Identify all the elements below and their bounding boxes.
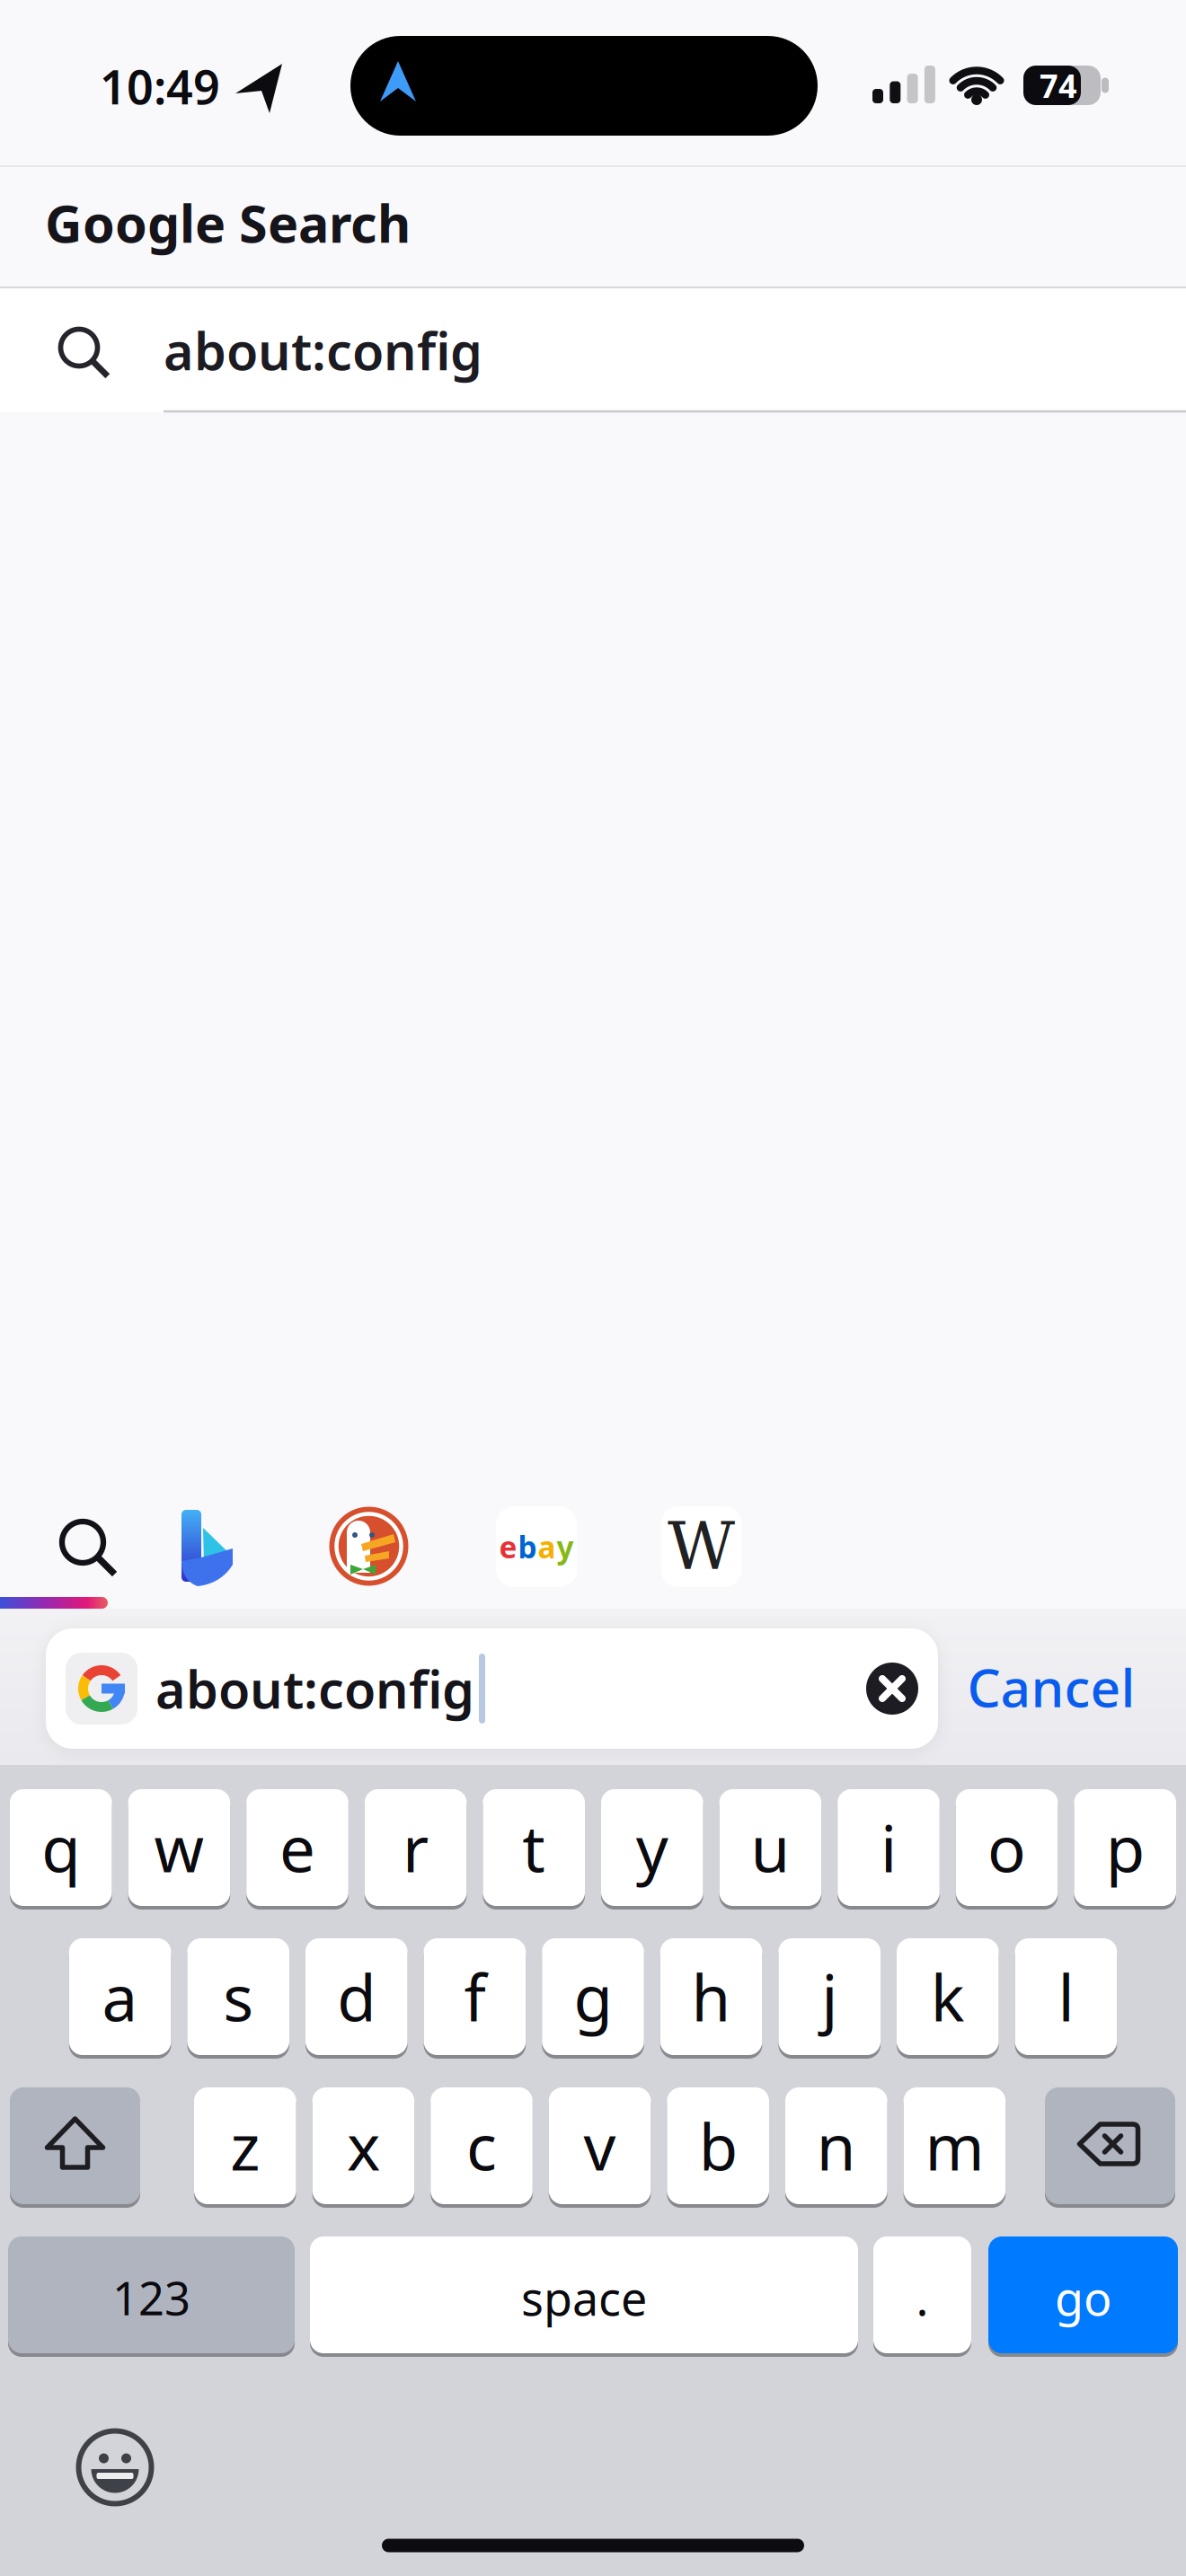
button[interactable]: about:config [0,288,1186,412]
button[interactable] [38,1502,128,1592]
button[interactable]: f [424,1936,526,2057]
button[interactable]: x [312,2086,414,2206]
button[interactable]: m [904,2086,1006,2206]
button[interactable]: about:config [46,1628,938,1749]
staticText: w [154,1805,204,1890]
staticText: about:config [164,316,482,384]
button[interactable]: 123 [8,2235,295,2355]
button[interactable]: u [719,1787,821,1908]
button[interactable]: w [128,1787,230,1908]
staticText: b [518,1527,537,1567]
button[interactable] [70,2422,160,2512]
button[interactable]: h [660,1936,762,2057]
staticText: 74 [1040,64,1077,107]
staticText: about:config [155,1654,474,1723]
button[interactable]: c [431,2086,533,2206]
button[interactable]: y [601,1787,703,1908]
button[interactable]: Cancel [967,1652,1135,1722]
button[interactable]: b [667,2086,769,2206]
button[interactable]: p [1074,1787,1176,1908]
staticText: d [337,1955,376,2039]
button[interactable] [324,1501,414,1591]
staticText: u [751,1805,790,1890]
button[interactable] [350,36,818,136]
button[interactable] [10,2086,140,2206]
button[interactable]: l [1015,1936,1117,2057]
staticText: . [916,2267,929,2329]
staticText: q [42,1805,80,1890]
staticText: m [925,2104,984,2188]
staticText: 10:49 [100,55,220,117]
button[interactable]: . [873,2235,971,2355]
staticText: space [521,2267,647,2329]
button[interactable]: d [305,1936,408,2057]
staticText: y [557,1527,574,1567]
staticText: b [699,2104,737,2188]
button[interactable]: s [187,1936,289,2057]
staticText: go [1055,2267,1111,2329]
staticText: a [538,1527,556,1567]
button[interactable]: z [194,2086,296,2206]
staticText: h [691,1955,731,2039]
button[interactable] [1045,2086,1175,2206]
button[interactable]: t [483,1787,585,1908]
button[interactable]: space [310,2235,858,2355]
staticText: Cancel [967,1652,1135,1722]
staticText: e [499,1527,517,1567]
staticText: 123 [112,2267,190,2328]
button[interactable]: a [69,1936,171,2057]
staticText: g [574,1955,612,2039]
button[interactable]: o [956,1787,1058,1908]
button[interactable]: e [246,1787,348,1908]
button[interactable]: e [496,1506,577,1587]
button[interactable]: go [988,2235,1178,2355]
staticText: i [881,1805,897,1890]
staticText: Google Search [45,189,411,257]
button[interactable]: W [661,1506,742,1587]
button[interactable]: j [778,1936,881,2057]
staticText: t [522,1805,546,1890]
staticText: p [1106,1805,1144,1890]
staticText: s [223,1955,254,2039]
staticText: z [230,2104,260,2188]
button[interactable]: i [838,1787,940,1908]
button[interactable]: q [10,1787,112,1908]
staticText: y [636,1805,668,1890]
staticText: n [817,2104,856,2188]
button[interactable]: r [365,1787,467,1908]
staticText: k [931,1955,965,2039]
staticText: a [102,1955,138,2039]
staticText: c [466,2104,497,2188]
button[interactable]: k [897,1936,999,2057]
staticText: l [1058,1955,1074,2039]
staticText: r [403,1805,429,1890]
button[interactable]: n [785,2086,887,2206]
button[interactable]: v [549,2086,651,2206]
staticText: W [668,1509,735,1585]
staticText: f [464,1955,486,2039]
staticText: x [347,2104,380,2188]
button[interactable] [161,1502,251,1592]
staticText: o [988,1805,1026,1890]
button[interactable]: g [542,1936,644,2057]
staticText: j [821,1955,838,2039]
staticText: v [584,2104,616,2188]
staticText: e [279,1805,315,1890]
